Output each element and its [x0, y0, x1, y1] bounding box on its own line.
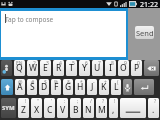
button[interactable]: % — [51, 79, 61, 95]
staticText: SYM — [2, 104, 15, 112]
staticText: ? — [102, 98, 105, 105]
staticText: D — [41, 81, 48, 93]
button[interactable]: Send — [135, 26, 154, 39]
staticText: F — [54, 81, 59, 93]
staticText: 0 — [137, 60, 140, 67]
staticText: I — [109, 62, 113, 74]
button[interactable]: Space — [120, 98, 146, 118]
staticText: 4 — [59, 60, 62, 67]
button[interactable]: - — [87, 79, 97, 95]
staticText: 3 — [46, 60, 49, 67]
button[interactable]: Backspace — [144, 60, 159, 76]
button[interactable]: 5 — [66, 60, 77, 76]
staticText: U — [94, 62, 101, 74]
button[interactable]: " — [31, 98, 42, 118]
button[interactable]: Enter — [134, 79, 154, 95]
button[interactable]: 6 — [79, 60, 90, 76]
staticText: $ — [44, 79, 47, 86]
button[interactable]: Voice input — [123, 79, 132, 95]
staticText: C — [47, 104, 53, 116]
button[interactable]: ; — [70, 98, 81, 118]
button[interactable]: 7 — [92, 60, 103, 76]
staticText: T — [69, 62, 74, 74]
button[interactable]: 0 — [131, 60, 142, 76]
staticText: P — [134, 62, 140, 74]
staticText: O — [120, 62, 127, 74]
staticText: 21:22 — [140, 0, 158, 8]
staticText: X — [34, 104, 40, 116]
staticText: ! — [114, 98, 116, 105]
button[interactable]: ( — [111, 79, 121, 95]
staticText: Q — [16, 62, 23, 74]
button[interactable]: ' — [44, 98, 55, 118]
staticText: W — [29, 62, 37, 74]
staticText: 2 — [33, 60, 36, 67]
button[interactable]: # — [27, 79, 37, 95]
button[interactable]: 8 — [105, 60, 116, 76]
button[interactable]: 4 — [53, 60, 64, 76]
button[interactable]: + — [99, 79, 109, 95]
staticText: . — [152, 104, 155, 116]
staticText: ( — [117, 79, 119, 86]
staticText: & — [67, 79, 71, 86]
staticText: J — [91, 81, 94, 93]
button[interactable]: : — [57, 98, 68, 118]
staticText: R — [56, 62, 62, 74]
staticText: L — [114, 81, 119, 93]
staticText: ; — [77, 98, 79, 105]
staticText: 7 — [98, 60, 101, 67]
button[interactable]: ! — [109, 98, 118, 118]
staticText: Tap to compose — [5, 15, 54, 24]
button[interactable]: Shift — [1, 79, 13, 95]
staticText: Z — [21, 104, 26, 116]
staticText: Y — [82, 62, 87, 74]
staticText: : — [64, 98, 66, 105]
staticText: 8 — [111, 60, 114, 67]
staticText: H — [77, 81, 84, 93]
staticText: E — [43, 62, 48, 74]
staticText: ' — [51, 98, 53, 105]
staticText: EN — [16, 60, 23, 67]
button[interactable]: @ — [15, 79, 25, 95]
button[interactable]: * — [75, 79, 85, 95]
staticText: 5 — [72, 60, 75, 67]
staticText: 6 — [85, 60, 88, 67]
staticText: 9 — [124, 60, 127, 67]
button[interactable]: ! — [18, 98, 29, 118]
staticText: G — [65, 81, 72, 93]
staticText: S — [30, 81, 35, 93]
staticText: B — [73, 104, 79, 116]
button[interactable]: $ — [39, 79, 49, 95]
staticText: + — [104, 79, 107, 86]
button[interactable]: Keyboard options — [1, 60, 12, 76]
staticText: # — [31, 79, 35, 86]
button[interactable]: EN — [14, 60, 25, 76]
staticText: / — [90, 98, 92, 105]
staticText: M — [98, 104, 106, 116]
staticText: A — [17, 81, 23, 93]
button[interactable]: 9 — [118, 60, 129, 76]
staticText: ? — [154, 98, 157, 105]
button[interactable]: SYM — [1, 98, 16, 118]
button[interactable]: & — [63, 79, 73, 95]
staticText: " — [37, 98, 40, 105]
button[interactable]: 3 — [40, 60, 51, 76]
staticText: * — [80, 79, 83, 86]
staticText: K — [101, 81, 107, 93]
button[interactable]: Tap to compose — [1, 11, 126, 57]
staticText: V — [60, 104, 66, 116]
staticText: @ — [18, 79, 23, 86]
staticText: , — [112, 104, 115, 116]
staticText: Send — [136, 28, 154, 38]
staticText: % — [54, 79, 59, 86]
staticText: ! — [25, 98, 27, 105]
staticText: N — [85, 104, 92, 116]
button[interactable]: 2 — [27, 60, 38, 76]
button[interactable]: ? — [148, 98, 159, 118]
staticText: - — [93, 79, 95, 86]
button[interactable]: ? — [96, 98, 107, 118]
button[interactable]: / — [83, 98, 94, 118]
